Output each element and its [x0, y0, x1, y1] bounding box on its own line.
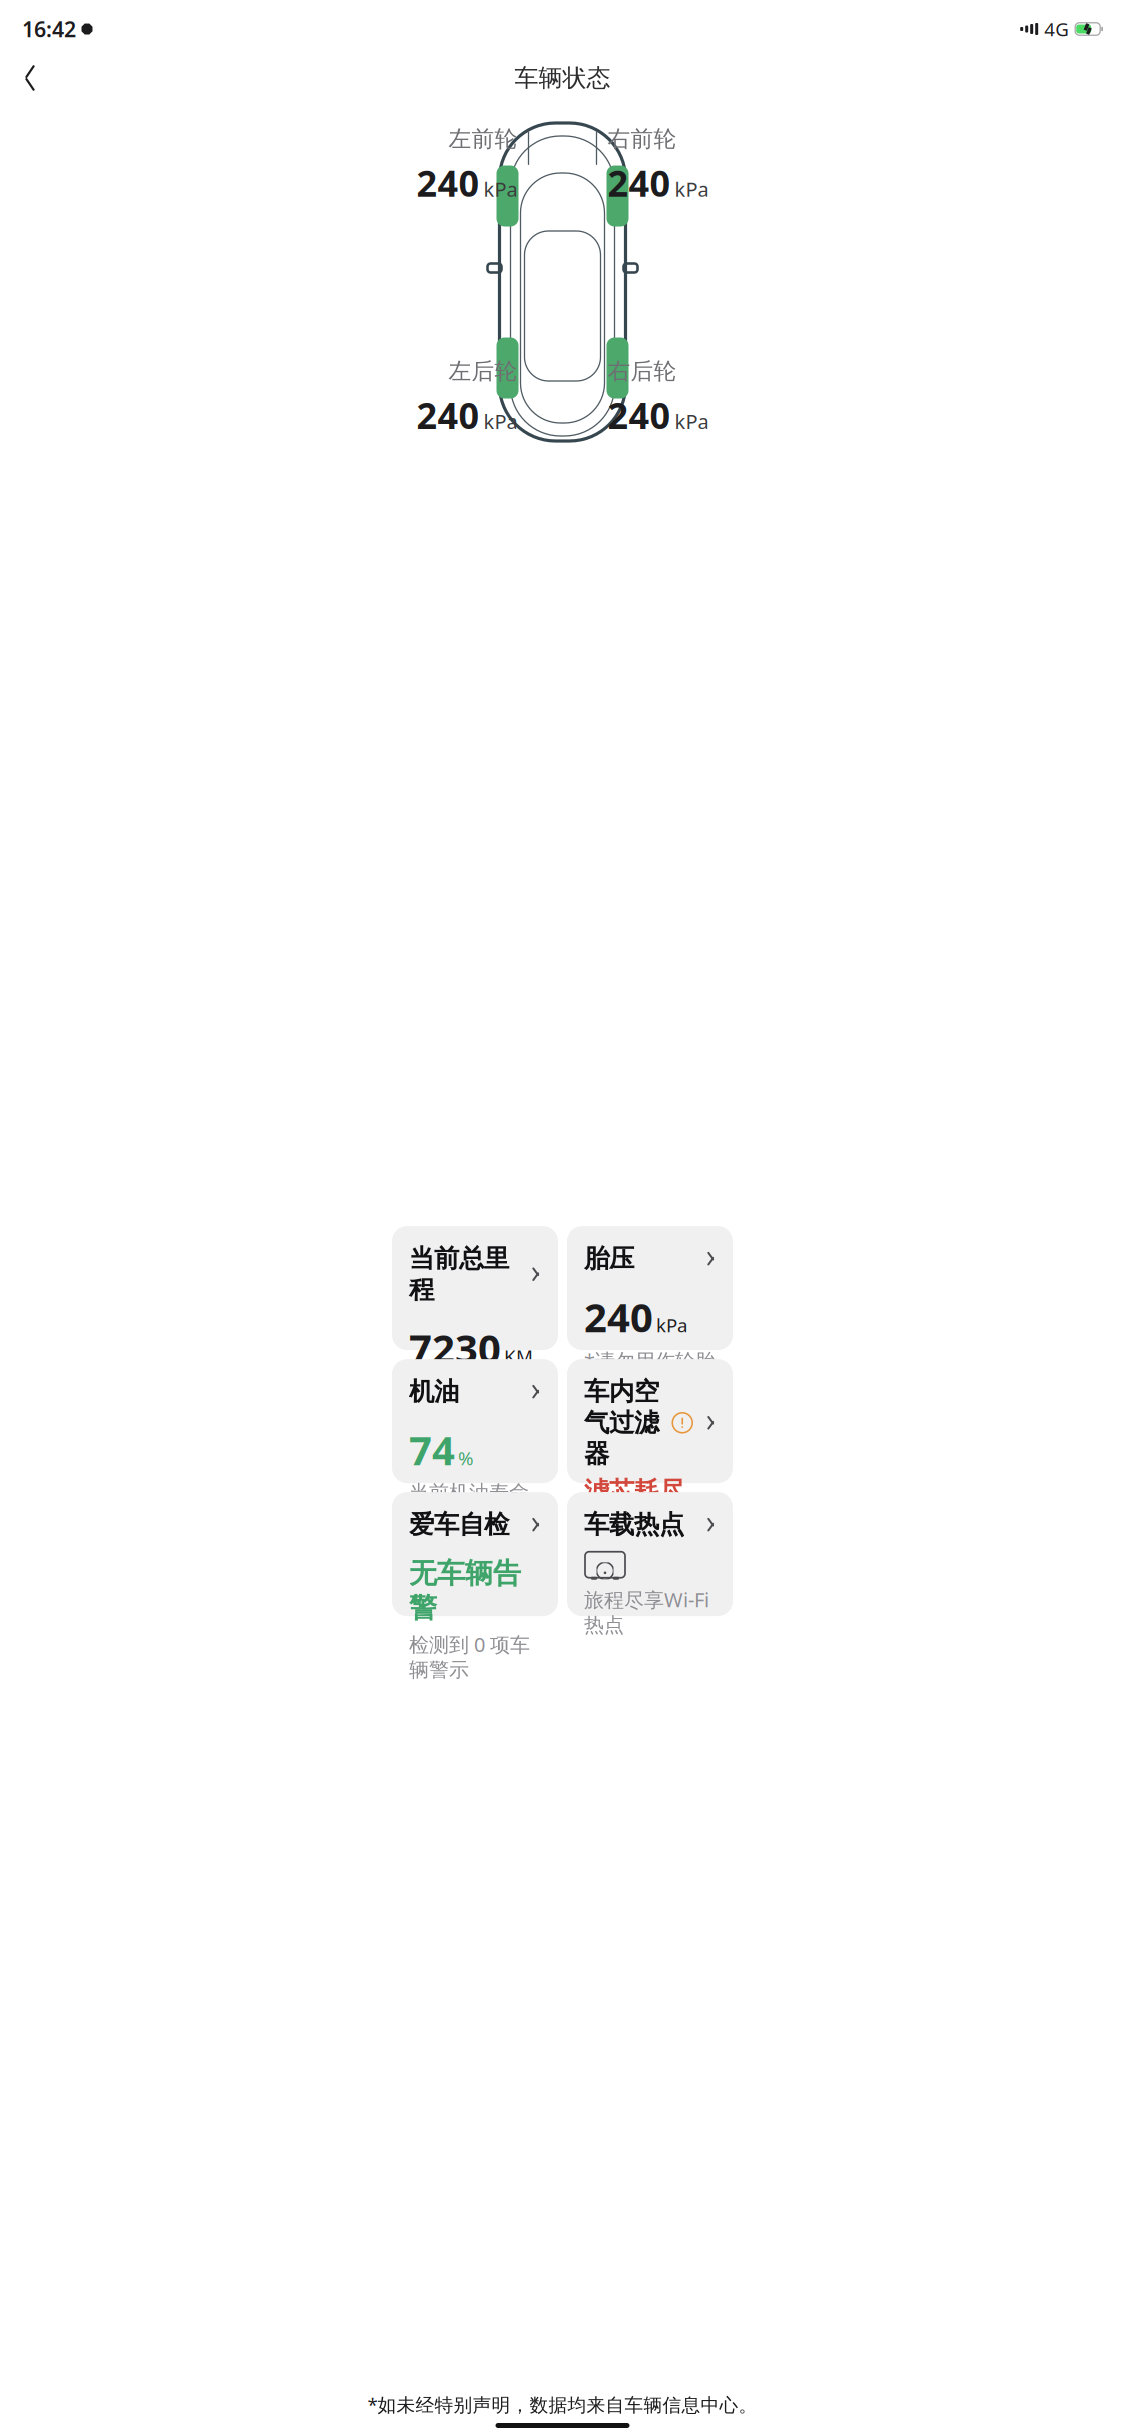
staticText: KM: [504, 1344, 533, 1369]
staticText: 74: [409, 1423, 455, 1476]
staticText: 7230: [409, 1321, 501, 1374]
button[interactable]: 机油: [392, 1359, 558, 1483]
staticText: kPa: [674, 176, 708, 202]
staticText: 爱车自检: [409, 1509, 509, 1540]
button[interactable]: 当前总里程: [392, 1226, 558, 1350]
staticText: 右后轮: [607, 357, 676, 385]
staticText: 240: [416, 159, 479, 207]
staticText: 16:42: [22, 15, 76, 43]
staticText: *如未经特别声明，数据均来自车辆信息中心。: [367, 2392, 757, 2417]
staticText: 请尽快更换: [584, 1509, 709, 1540]
staticText: 机油: [409, 1376, 459, 1407]
button[interactable]: 车内空气过滤器: [567, 1359, 733, 1483]
staticText: 重置于 --/--: [584, 1546, 680, 1572]
staticText: 左后轮: [448, 357, 517, 385]
button[interactable]: 胎压: [567, 1226, 733, 1350]
staticText: 车载热点: [584, 1509, 684, 1540]
button[interactable]: 爱车自检: [392, 1492, 558, 1616]
staticText: 下次保养里程 10000KM: [409, 1378, 534, 1432]
staticText: kPa: [483, 176, 517, 202]
staticText: *请勿用作轮胎气压测量计: [584, 1347, 715, 1398]
staticText: %: [458, 1446, 474, 1470]
staticText: kPa: [674, 408, 708, 435]
staticText: 胎压: [584, 1243, 634, 1274]
button[interactable]: 返回: [8, 56, 52, 100]
staticText: kPa: [483, 408, 517, 435]
staticText: 无车辆告警: [409, 1556, 521, 1625]
staticText: 左前轮: [448, 125, 517, 153]
staticText: 滤芯耗尽: [584, 1475, 684, 1507]
staticText: 4G: [1044, 17, 1069, 41]
button[interactable]: 车载热点: [567, 1492, 733, 1616]
staticText: 旅程尽享Wi-Fi热点: [584, 1586, 709, 1637]
staticText: 车辆状态: [514, 63, 610, 93]
staticText: kPa: [656, 1313, 687, 1337]
staticText: 右前轮: [607, 125, 676, 153]
staticText: 240: [584, 1290, 653, 1343]
staticText: 240: [416, 391, 479, 439]
staticText: 当前机油寿命: [409, 1480, 529, 1505]
staticText: 240: [607, 391, 670, 439]
staticText: 车内空气过滤器: [584, 1376, 659, 1469]
staticText: 当前总里程: [409, 1243, 509, 1305]
staticText: 240: [607, 159, 670, 207]
staticText: 检测到 0 项车辆警示: [409, 1631, 530, 1682]
